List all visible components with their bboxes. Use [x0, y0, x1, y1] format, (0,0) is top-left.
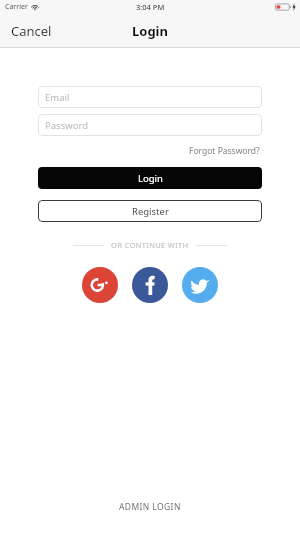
staticText: OR CONTINUE WITH: [111, 240, 189, 250]
button[interactable]: Sign in with Facebook: [132, 267, 168, 303]
button[interactable]: Cancel: [0, 18, 60, 44]
staticText: Password: [45, 119, 88, 132]
staticText: Forgot Password?: [189, 145, 260, 157]
staticText: Login: [132, 22, 168, 40]
staticText: Register: [132, 205, 169, 218]
button[interactable]: Sign in with Twitter: [182, 267, 218, 303]
staticText: Email: [45, 91, 70, 104]
button[interactable]: Forgot Password?: [187, 144, 262, 158]
button[interactable]: ADMIN LOGIN: [113, 498, 187, 516]
button[interactable]: Sign in with Google: [82, 267, 118, 303]
staticText: 3:04 PM: [136, 2, 165, 12]
staticText: ADMIN LOGIN: [119, 501, 181, 513]
button[interactable]: Email: [38, 86, 262, 108]
button[interactable]: Password: [38, 114, 262, 136]
staticText: Login: [138, 172, 163, 185]
button[interactable]: Register: [38, 200, 262, 222]
button[interactable]: Login: [38, 167, 262, 189]
staticText: Carrier: [5, 2, 28, 12]
staticText: Cancel: [11, 22, 52, 40]
